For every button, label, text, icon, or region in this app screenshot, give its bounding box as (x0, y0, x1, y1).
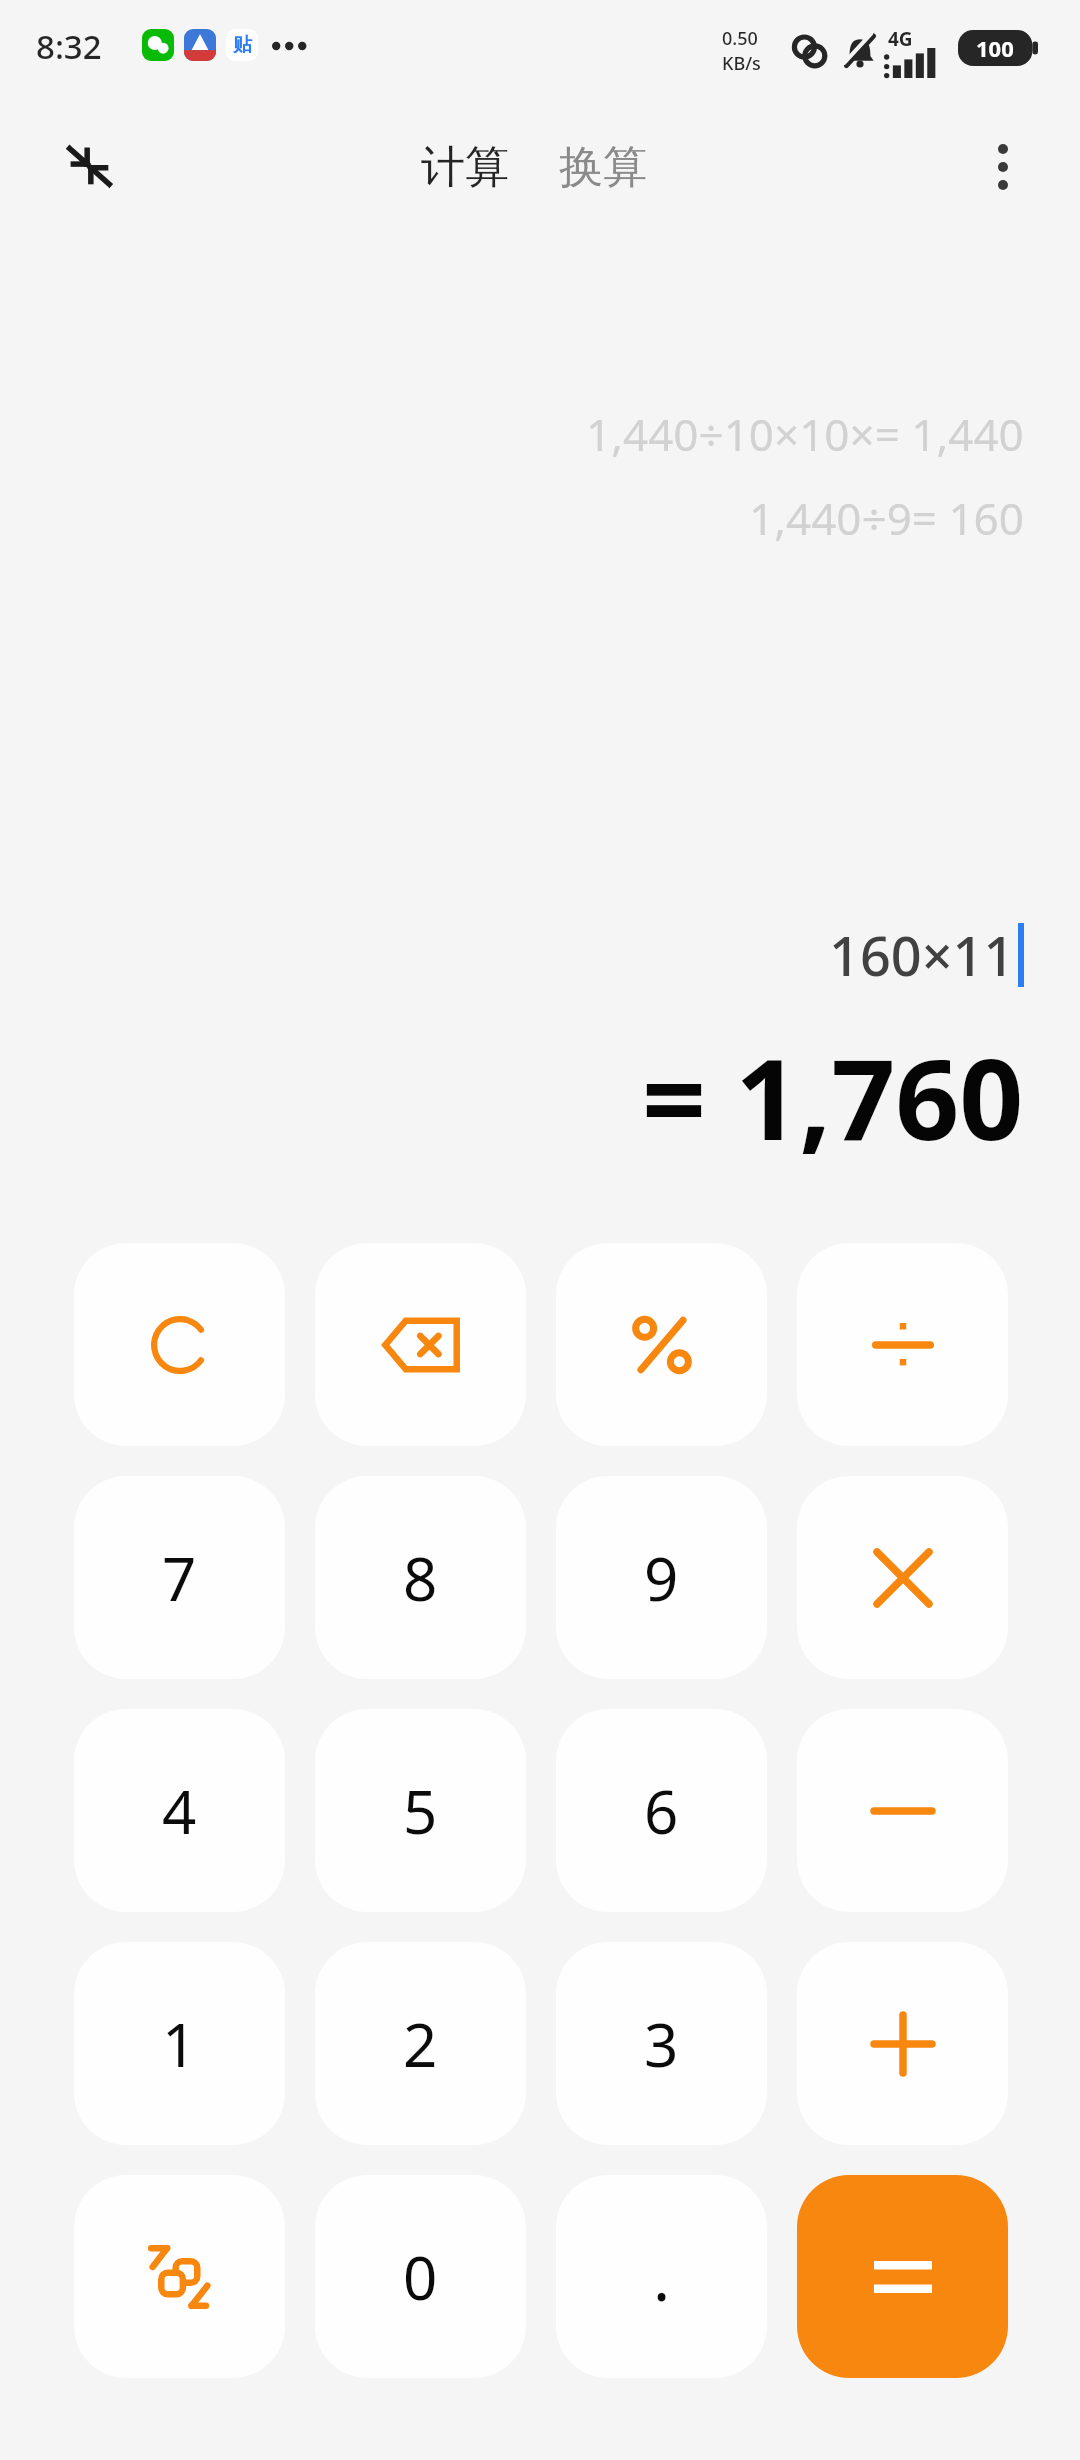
staticText: 1,440÷9= 160 (749, 488, 1024, 548)
staticText: 4 (162, 1770, 197, 1852)
staticText: 2 (403, 2003, 438, 2085)
button[interactable]: 1 (74, 1942, 285, 2145)
staticText: 9 (644, 1537, 679, 1619)
button[interactable]: 4 (74, 1709, 285, 1912)
button[interactable]: 6 (556, 1709, 767, 1912)
staticText: 100 (976, 33, 1014, 63)
button[interactable]: Plus (797, 1942, 1008, 2145)
button[interactable]: 8 (315, 1476, 526, 1679)
staticText: 换算 (559, 140, 647, 195)
button[interactable]: Collapse (46, 122, 132, 208)
button[interactable]: Clear (74, 1243, 285, 1446)
button[interactable]: 7 (74, 1476, 285, 1679)
button[interactable]: 1,440÷9= 160 (749, 488, 1024, 548)
staticText: 4G (888, 26, 913, 52)
button[interactable]: . (556, 2175, 767, 2378)
button[interactable]: Minus (797, 1709, 1008, 1912)
staticText: . (653, 2233, 671, 2320)
staticText: 计算 (421, 140, 509, 195)
button[interactable]: 2 (315, 1942, 526, 2145)
staticText: 7 (162, 1537, 197, 1619)
button[interactable]: 计算 (409, 130, 521, 205)
button[interactable]: 5 (315, 1709, 526, 1912)
button[interactable]: Divide (797, 1243, 1008, 1446)
staticText: 1,440÷10×10×= 1,440 (586, 404, 1024, 464)
staticText: 160×11 (829, 918, 1015, 992)
button[interactable]: 1,440÷10×10×= 1,440 (586, 404, 1024, 464)
button[interactable]: 0 (315, 2175, 526, 2378)
staticText: KB/s (722, 51, 761, 76)
staticText: 6 (644, 1770, 679, 1852)
button[interactable]: Backspace (315, 1243, 526, 1446)
staticText: 0 (403, 2236, 438, 2318)
button[interactable]: More functions (74, 2175, 285, 2378)
button[interactable]: More options (960, 124, 1046, 210)
button[interactable]: Percent (556, 1243, 767, 1446)
button[interactable]: Multiply (797, 1476, 1008, 1679)
staticText: 5 (403, 1770, 438, 1852)
staticText: 8:32 (36, 24, 102, 69)
staticText: 贴 (233, 33, 252, 57)
button[interactable]: 3 (556, 1942, 767, 2145)
staticText: 8 (403, 1537, 438, 1619)
staticText: 1 (162, 2003, 197, 2085)
staticText: 3 (644, 2003, 679, 2085)
staticText: 0.50 (722, 26, 758, 51)
button[interactable]: 换算 (547, 130, 659, 205)
button[interactable]: Equals (797, 2175, 1008, 2378)
staticText: = 1,760 (642, 1020, 1024, 1173)
button[interactable]: 9 (556, 1476, 767, 1679)
